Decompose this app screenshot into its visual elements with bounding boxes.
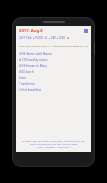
button[interactable]: SEE <box>51 36 56 40</box>
button[interactable]: 26 B dinner with Mama <box>19 51 88 57</box>
button[interactable]: CFO weekly status <box>19 57 88 63</box>
button[interactable]: 2 first breakfast <box>19 87 88 93</box>
staticText: learn and manage can learn us my team <box>19 142 88 145</box>
staticText: #3 B finnair to Mary <box>19 64 48 68</box>
button[interactable]: FOOD <box>35 36 44 40</box>
staticText: — stay + forever + a own day — <box>19 145 88 148</box>
staticText: ? said hmm <box>19 82 36 86</box>
staticText: 2 first breakfast <box>19 88 42 92</box>
button[interactable]: #3 B finnair to Mary <box>19 63 88 69</box>
button[interactable]: 2017. Aug.8 <box>19 28 43 34</box>
button[interactable]: Intro <box>19 75 88 81</box>
staticText: If needs you can open us my tasks, a sha… <box>19 139 88 142</box>
button[interactable]: LIVE <box>59 36 66 40</box>
button[interactable]: ? said hmm <box>19 81 88 87</box>
button[interactable]: 24/7 Talk <box>19 36 32 40</box>
staticText: CFO weekly status <box>22 58 48 62</box>
button[interactable]: 8:00 lunch <box>19 69 88 75</box>
button[interactable]: G <box>45 36 48 40</box>
staticText: Click here, input or enter it — member n… <box>19 44 88 47</box>
staticText: 26 B dinner with Mama <box>19 52 52 56</box>
staticText: 8:00 lunch <box>19 70 34 74</box>
staticText: - <box>44 36 45 40</box>
staticText: Intro <box>19 76 26 80</box>
